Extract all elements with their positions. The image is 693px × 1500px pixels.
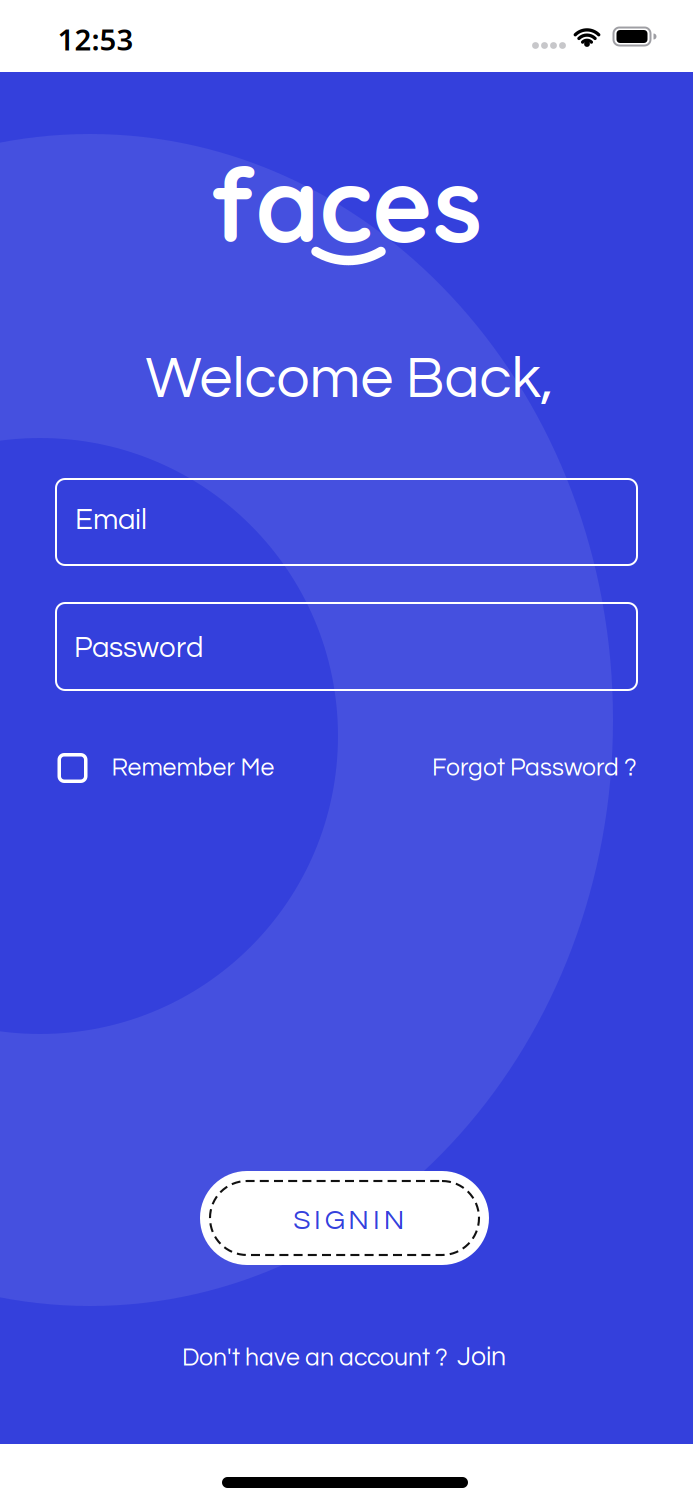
button[interactable]: Password (55, 602, 638, 691)
staticText: N (384, 1206, 405, 1235)
staticText: I (373, 1206, 380, 1235)
staticText: S (293, 1206, 310, 1235)
staticText: Forgot Password ? (432, 755, 637, 781)
staticText: 12:53 (57, 19, 133, 58)
button[interactable]: S (200, 1171, 489, 1265)
staticText: I (314, 1206, 321, 1235)
staticText: Welcome Back, (145, 349, 553, 409)
staticText: Join (457, 1343, 506, 1371)
button[interactable]: Remember Me (55, 753, 274, 783)
button[interactable]: Email (55, 478, 638, 566)
staticText: Remember Me (111, 755, 274, 781)
staticText: Password (74, 633, 203, 663)
staticText: Email (75, 505, 147, 535)
staticText: faces (210, 139, 482, 268)
staticText: N (348, 1206, 369, 1235)
staticText: Don't have an account ? (182, 1345, 448, 1371)
button[interactable]: Forgot Password ? (432, 755, 638, 781)
staticText: G (325, 1206, 345, 1235)
button[interactable]: Join (457, 1343, 506, 1371)
